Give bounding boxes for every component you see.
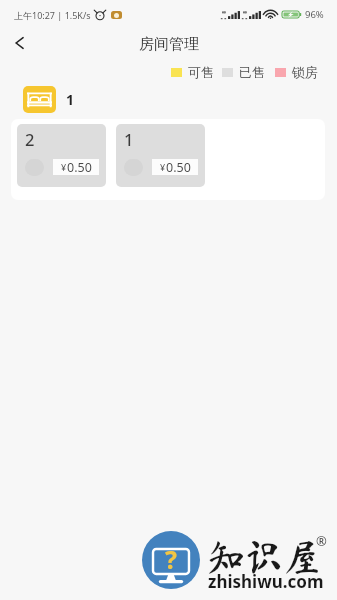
staticText: ¥ — [160, 161, 166, 173]
staticText: ¥ — [61, 161, 67, 173]
staticText: 锁房 — [292, 64, 318, 80]
button[interactable]: Room type — [23, 86, 56, 113]
staticText: ® — [316, 532, 327, 550]
staticText: 可售 — [188, 64, 214, 80]
staticText: 2 — [25, 128, 35, 150]
button[interactable]: 已售 — [222, 64, 265, 80]
staticText: ? — [165, 542, 177, 576]
staticText: 0.50 — [67, 159, 92, 175]
staticText: 96% — [305, 8, 324, 21]
button[interactable]: 1 — [116, 124, 205, 187]
staticText: 1 — [66, 90, 75, 109]
staticText: 知识屋 — [207, 538, 322, 576]
button[interactable]: 可售 — [171, 64, 214, 80]
button[interactable]: 锁房 — [275, 64, 318, 80]
staticText: 已售 — [239, 64, 265, 80]
staticText: 0.50 — [166, 159, 191, 175]
staticText: zhishiwu.com — [208, 570, 324, 593]
button[interactable]: Back — [0, 25, 38, 61]
staticText: 上午10:27 | 1.5K/s — [14, 9, 91, 21]
staticText: 房间管理 — [139, 35, 199, 54]
button[interactable]: 2 — [17, 124, 106, 187]
staticText: 1 — [124, 128, 134, 150]
